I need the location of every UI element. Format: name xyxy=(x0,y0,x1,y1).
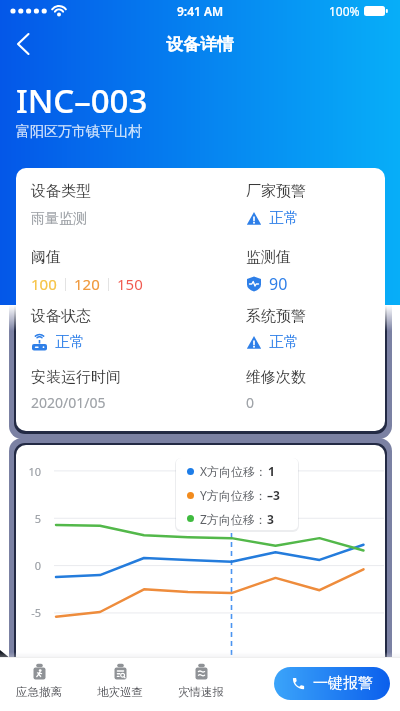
staticText: 正常 xyxy=(55,333,85,352)
staticText: –3 xyxy=(267,487,280,503)
staticText: 应急撤离 xyxy=(16,685,62,699)
staticText: -5 xyxy=(16,605,41,620)
staticText: -10 xyxy=(16,653,41,668)
staticText: 9:41 AM xyxy=(177,3,224,19)
staticText: 系统预警 xyxy=(246,307,306,326)
staticText: 灾情速报 xyxy=(178,685,224,699)
staticText: 阈值 xyxy=(31,248,61,267)
staticText: 地灾巡查 xyxy=(97,685,143,699)
staticText: 雨量监测 xyxy=(31,210,87,228)
staticText: Z方向位移： xyxy=(200,511,267,527)
staticText: Y方向位移： xyxy=(200,487,267,503)
staticText: 监测值 xyxy=(246,248,291,267)
staticText: 富阳区万市镇平山村 xyxy=(16,123,142,141)
staticText: 安装运行时间 xyxy=(31,368,121,387)
staticText: 3 xyxy=(267,511,274,527)
staticText: 0 xyxy=(246,393,255,412)
staticText: INC–003 xyxy=(16,78,148,123)
staticText: X方向位移： xyxy=(200,463,268,479)
button[interactable]: 灾情速报 xyxy=(173,663,229,699)
staticText: 10 xyxy=(16,464,41,479)
staticText: 厂家预警 xyxy=(246,182,306,201)
staticText: 1 xyxy=(268,463,275,479)
staticText: 2020/01/05 xyxy=(31,393,106,412)
staticText: 设备类型 xyxy=(31,182,91,201)
staticText: 正常 xyxy=(269,333,299,352)
staticText: 设备状态 xyxy=(31,307,91,326)
staticText: 120 xyxy=(74,274,100,294)
button[interactable]: 应急撤离 xyxy=(11,663,67,699)
staticText: 正常 xyxy=(269,209,299,228)
staticText: 100% xyxy=(329,3,360,19)
staticText: 100 xyxy=(31,274,57,294)
button[interactable]: 一键报警 xyxy=(274,667,390,700)
button[interactable]: 地灾巡查 xyxy=(92,663,148,699)
staticText: 90 xyxy=(269,273,288,295)
staticText: 设备详情 xyxy=(166,34,234,55)
staticText: 维修次数 xyxy=(246,368,306,387)
button[interactable] xyxy=(4,24,44,64)
staticText: 一键报警 xyxy=(313,674,373,693)
staticText: 5 xyxy=(16,511,41,526)
staticText: 0 xyxy=(16,558,41,573)
staticText: 150 xyxy=(117,274,143,294)
